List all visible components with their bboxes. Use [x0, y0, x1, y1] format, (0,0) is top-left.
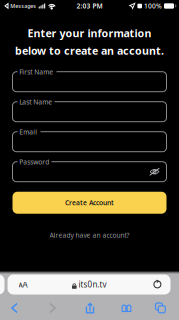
button[interactable]: Already have an account?	[49, 231, 129, 240]
staticText: Messages	[10, 2, 36, 10]
staticText: Create Account	[65, 198, 114, 207]
staticText: 100%	[144, 2, 162, 10]
staticText: Email	[19, 127, 37, 136]
staticText: Last Name	[19, 97, 52, 106]
button[interactable]: Forward	[40, 297, 64, 319]
button[interactable]: Share	[78, 297, 102, 319]
staticText: Enter your information	[27, 26, 151, 40]
button[interactable]: First Name	[12, 72, 166, 92]
staticText: 2:03 PM	[76, 2, 102, 10]
staticText: its0n.tv	[79, 279, 107, 290]
button[interactable]: ᴀA	[7, 274, 170, 294]
button[interactable]: Tabs	[148, 297, 172, 319]
button[interactable]: Password	[12, 162, 166, 182]
button[interactable]: Last Name	[12, 102, 166, 122]
staticText: Already have an account?	[49, 231, 129, 240]
button[interactable]: Bookmarks	[114, 297, 138, 319]
staticText: ᴀA	[18, 279, 27, 290]
button[interactable]: Back	[2, 297, 26, 319]
staticText: below to create an account.	[15, 44, 164, 58]
staticText: Password	[19, 157, 49, 166]
staticText: First Name	[19, 67, 53, 76]
button[interactable]: Email	[12, 132, 166, 152]
button[interactable]: Create Account	[12, 192, 166, 214]
